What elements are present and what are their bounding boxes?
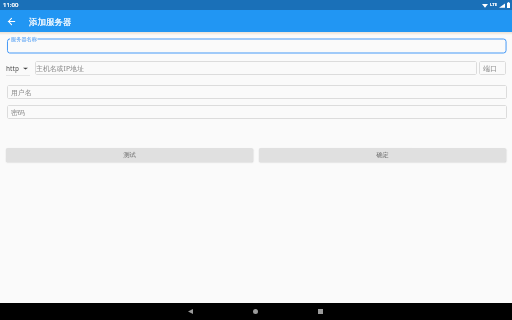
staticText: 密码 [11, 108, 25, 117]
button[interactable]: 服务器名称 [7, 38, 507, 54]
button[interactable]: Back [178, 303, 203, 320]
staticText: 11:00 [3, 1, 19, 9]
staticText: 主机名或IP地址 [36, 64, 84, 73]
staticText: LTE [490, 2, 498, 8]
button[interactable]: Recent apps [308, 303, 333, 320]
staticText: http [6, 64, 19, 73]
button[interactable]: 确定 [259, 148, 506, 162]
button[interactable]: Back [4, 14, 19, 29]
button[interactable]: 主机名或IP地址 [35, 61, 477, 75]
staticText: 确定 [376, 151, 389, 159]
button[interactable]: 端口 [479, 61, 506, 75]
button[interactable]: Protocol: http [6, 61, 29, 75]
button[interactable]: Home [243, 303, 268, 320]
staticText: 测试 [123, 151, 136, 159]
staticText: 用户名 [11, 88, 32, 97]
staticText: 服务器名称 [11, 36, 37, 43]
button[interactable]: 测试 [6, 148, 253, 162]
staticText: 添加服务器 [29, 17, 72, 28]
button[interactable]: 密码 [7, 105, 507, 119]
staticText: 端口 [483, 64, 497, 73]
button[interactable]: 用户名 [7, 85, 507, 99]
